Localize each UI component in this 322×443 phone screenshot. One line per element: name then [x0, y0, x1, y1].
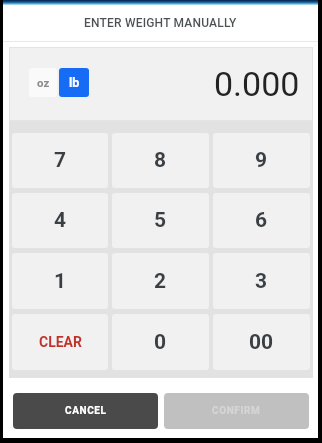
- staticText: CANCEL: [65, 405, 107, 417]
- button[interactable]: 7: [12, 133, 108, 188]
- button[interactable]: CONFIRM: [164, 393, 309, 429]
- button[interactable]: 0: [112, 314, 209, 370]
- button[interactable]: lb: [59, 68, 89, 97]
- staticText: 0.000: [214, 64, 300, 104]
- button[interactable]: CLEAR: [12, 314, 108, 370]
- staticText: CONFIRM: [212, 405, 261, 417]
- button[interactable]: 2: [112, 253, 209, 309]
- staticText: 1: [54, 269, 67, 294]
- staticText: 7: [54, 148, 67, 173]
- staticText: 4: [54, 208, 67, 233]
- button[interactable]: 4: [12, 193, 108, 248]
- staticText: oz: [37, 76, 50, 89]
- button[interactable]: oz: [29, 68, 57, 97]
- staticText: 9: [255, 148, 268, 173]
- staticText: CLEAR: [39, 334, 82, 350]
- button[interactable]: 9: [213, 133, 310, 188]
- staticText: 3: [255, 269, 268, 294]
- button[interactable]: 00: [213, 314, 310, 370]
- staticText: lb: [69, 75, 80, 90]
- staticText: 2: [154, 269, 167, 294]
- staticText: ENTER WEIGHT MANUALLY: [84, 16, 237, 30]
- staticText: 5: [154, 208, 167, 233]
- staticText: 0: [154, 330, 167, 355]
- button[interactable]: 3: [213, 253, 310, 309]
- staticText: 00: [249, 330, 274, 355]
- staticText: 6: [255, 208, 268, 233]
- staticText: 8: [154, 148, 167, 173]
- button[interactable]: 6: [213, 193, 310, 248]
- button[interactable]: 1: [12, 253, 108, 309]
- button[interactable]: 8: [112, 133, 209, 188]
- button[interactable]: 5: [112, 193, 209, 248]
- button[interactable]: CANCEL: [13, 393, 158, 429]
